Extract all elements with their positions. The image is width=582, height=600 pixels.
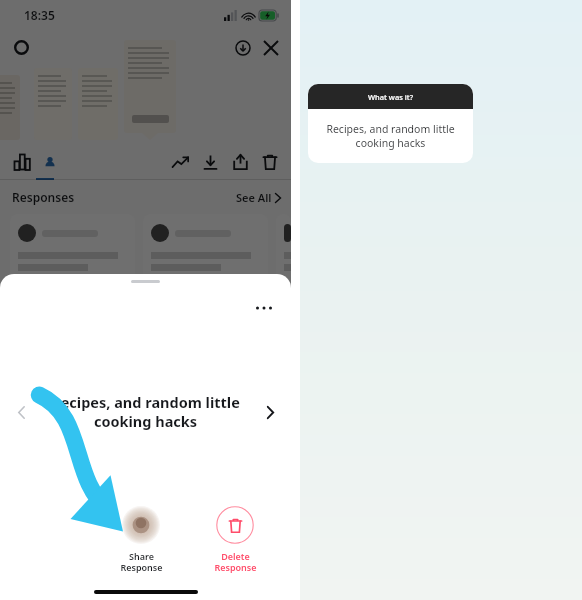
button[interactable]: Trending [165, 147, 195, 177]
button[interactable]: More options [251, 295, 277, 321]
button[interactable] [34, 68, 72, 140]
staticText: Recipes, and random little cooking hacks [326, 122, 455, 150]
button[interactable]: What was it? [308, 84, 473, 163]
button[interactable] [143, 214, 268, 284]
button[interactable]: Delete Response [199, 506, 271, 574]
button[interactable]: Next response [259, 401, 281, 423]
button[interactable]: Previous response [10, 401, 32, 423]
staticText: Responses [12, 189, 75, 205]
button[interactable]: Share Response [105, 506, 177, 574]
staticText: What was it? [368, 92, 414, 102]
button[interactable] [78, 68, 118, 140]
button[interactable]: Share [225, 147, 255, 177]
button[interactable]: Delete [255, 147, 285, 177]
staticText: Recipes, and random little cooking hacks [51, 392, 240, 431]
staticText: See All [236, 190, 272, 205]
button[interactable]: Close [257, 34, 285, 62]
button[interactable] [124, 40, 176, 133]
button[interactable]: See All [236, 190, 281, 205]
button[interactable]: Download [195, 147, 225, 177]
button[interactable]: Stats [8, 148, 36, 176]
staticText: Share Response [120, 550, 163, 574]
staticText: 18:35 [24, 7, 55, 23]
button[interactable]: Save [229, 34, 257, 62]
button[interactable] [0, 75, 20, 140]
button[interactable] [276, 214, 291, 284]
button[interactable] [10, 214, 135, 284]
button[interactable]: Insights [8, 34, 34, 60]
staticText: Delete Response [214, 550, 257, 574]
button[interactable]: Audience [36, 148, 64, 176]
